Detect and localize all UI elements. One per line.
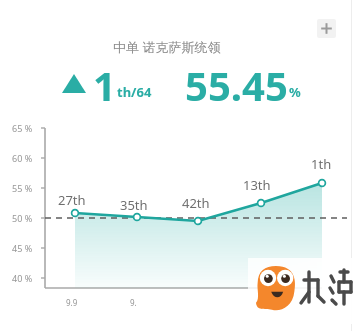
- staticText: 45 %: [12, 242, 33, 254]
- staticText: 9.9: [66, 297, 78, 308]
- staticText: th/64: [117, 83, 152, 101]
- staticText: 42th: [182, 194, 210, 212]
- staticText: 65 %: [12, 122, 33, 134]
- staticText: 1th: [311, 155, 332, 173]
- staticText: 55.45: [185, 58, 288, 112]
- staticText: 40 %: [12, 272, 33, 284]
- staticText: 50 %: [12, 212, 33, 224]
- button[interactable]: Add: [317, 19, 336, 38]
- staticText: 60 %: [12, 152, 33, 164]
- staticText: 1: [93, 58, 116, 112]
- staticText: 55 %: [12, 182, 33, 194]
- staticText: 中单 诺克萨斯统领: [113, 38, 221, 56]
- staticText: %: [289, 83, 301, 101]
- staticText: 35th: [120, 196, 148, 214]
- staticText: 9.: [130, 297, 137, 308]
- staticText: 27th: [58, 191, 86, 209]
- staticText: 13th: [243, 176, 271, 194]
